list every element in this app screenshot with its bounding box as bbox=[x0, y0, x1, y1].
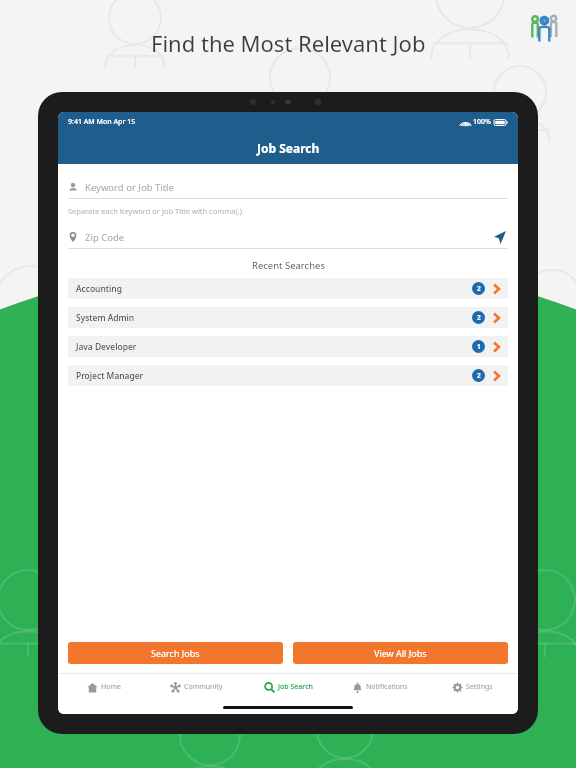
staticText: Project Manager bbox=[76, 370, 144, 382]
staticText: Job Search bbox=[278, 682, 313, 692]
staticText: Search Jobs bbox=[151, 647, 200, 659]
button[interactable]: View All Jobs bbox=[293, 642, 508, 664]
staticText: System Admin bbox=[76, 312, 135, 324]
staticText: Keyword or Job Title bbox=[85, 181, 174, 194]
staticText: 100% bbox=[473, 117, 491, 127]
button[interactable]: Search Jobs bbox=[68, 642, 283, 664]
staticText: Notifications bbox=[366, 682, 408, 692]
button[interactable]: Job Search bbox=[242, 674, 334, 700]
staticText: 2 bbox=[477, 313, 481, 322]
staticText: Find the Most Relevant Job bbox=[151, 28, 426, 58]
button[interactable]: Notifications bbox=[334, 674, 426, 700]
staticText: 2 bbox=[477, 284, 481, 293]
staticText: Accounting bbox=[76, 283, 122, 295]
button[interactable]: Community bbox=[150, 674, 242, 700]
staticText: Community bbox=[184, 682, 223, 692]
button[interactable]: Use current location bbox=[490, 228, 508, 246]
staticText: Java Developer bbox=[76, 341, 137, 353]
button[interactable]: Home bbox=[58, 674, 150, 700]
staticText: 2 bbox=[477, 371, 481, 380]
button[interactable]: Java Developer bbox=[68, 336, 508, 357]
button[interactable]: Settings bbox=[426, 674, 518, 700]
staticText: Home bbox=[101, 682, 121, 692]
staticText: 1 bbox=[477, 342, 481, 351]
staticText: Zip Code bbox=[85, 231, 125, 244]
button[interactable]: System Admin bbox=[68, 307, 508, 328]
staticText: Recent Searches bbox=[252, 259, 325, 272]
staticText: View All Jobs bbox=[374, 647, 427, 659]
button[interactable]: Accounting bbox=[68, 278, 508, 299]
staticText: Separate each Keyword or Job Title with … bbox=[68, 206, 242, 216]
button[interactable]: Project Manager bbox=[68, 365, 508, 386]
staticText: Job Search bbox=[257, 140, 320, 156]
staticText: 9:41 AM Mon Apr 15 bbox=[68, 117, 136, 127]
staticText: Settings bbox=[466, 682, 493, 692]
other: App logo bbox=[528, 12, 560, 44]
